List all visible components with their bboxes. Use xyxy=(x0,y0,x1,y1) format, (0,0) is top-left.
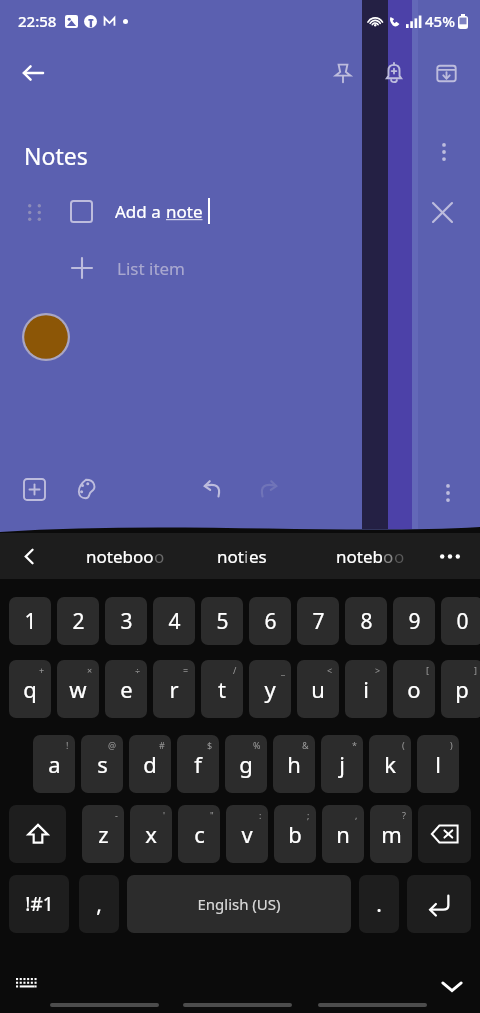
staticText: * xyxy=(352,739,357,751)
staticText: o xyxy=(383,545,394,568)
button[interactable]: 7 xyxy=(297,597,339,645)
staticText: e xyxy=(120,674,133,704)
button[interactable]: w xyxy=(57,660,99,718)
button[interactable]: p xyxy=(441,660,480,718)
staticText: ! xyxy=(66,739,69,751)
button[interactable]: 5 xyxy=(201,597,243,645)
button[interactable]: noteboo xyxy=(70,533,180,579)
button[interactable]: r xyxy=(153,660,195,718)
button[interactable]: n xyxy=(322,805,364,863)
staticText: o xyxy=(407,674,421,704)
button[interactable]: 6 xyxy=(249,597,291,645)
staticText: 5 xyxy=(216,607,229,636)
button[interactable]: b xyxy=(274,805,316,863)
button[interactable]: z xyxy=(82,805,124,863)
button[interactable]: Add xyxy=(10,465,58,513)
button[interactable]: x xyxy=(130,805,172,863)
staticText: . xyxy=(376,890,382,919)
button[interactable]: Enter xyxy=(407,875,471,933)
button[interactable]: Color palette xyxy=(62,465,110,513)
staticText: m xyxy=(381,819,402,849)
staticText: f xyxy=(194,749,202,779)
staticText: 4 xyxy=(168,607,181,636)
button[interactable]: Change keyboard xyxy=(8,966,46,1004)
staticText: s xyxy=(97,749,108,779)
button[interactable]: Add a xyxy=(0,190,480,234)
staticText: ' xyxy=(163,809,166,821)
button[interactable]: 0 xyxy=(441,597,480,645)
button[interactable]: 8 xyxy=(345,597,387,645)
staticText: Add a xyxy=(115,200,166,223)
button[interactable]: More options xyxy=(422,130,466,174)
staticText: 7 xyxy=(312,607,325,636)
staticText: noteb xyxy=(336,545,383,568)
staticText: b xyxy=(288,819,302,849)
button[interactable]: j xyxy=(321,735,363,793)
button[interactable]: t xyxy=(201,660,243,718)
button[interactable]: , xyxy=(79,875,119,933)
staticText: note xyxy=(166,200,203,223)
button[interactable]: o xyxy=(393,660,435,718)
staticText: !#1 xyxy=(25,891,54,917)
staticText: 9 xyxy=(408,607,421,636)
button[interactable]: . xyxy=(359,875,399,933)
button[interactable]: g xyxy=(225,735,267,793)
staticText: q xyxy=(23,674,37,704)
staticText: 22:58 xyxy=(18,11,57,31)
button[interactable]: More xyxy=(424,469,472,517)
staticText: o xyxy=(154,545,165,568)
button[interactable]: f xyxy=(177,735,219,793)
button[interactable]: 9 xyxy=(393,597,435,645)
button[interactable]: More suggestions xyxy=(428,534,472,578)
staticText: _ xyxy=(281,664,285,676)
button[interactable]: Previous suggestions xyxy=(8,535,50,577)
button[interactable]: Pin xyxy=(318,48,368,98)
button[interactable]: y xyxy=(249,660,291,718)
staticText: ) xyxy=(450,739,453,751)
button[interactable]: !#1 xyxy=(9,875,69,933)
button[interactable]: not xyxy=(196,533,288,579)
button[interactable]: Remove item xyxy=(420,190,464,234)
button[interactable]: k xyxy=(369,735,411,793)
button[interactable]: u xyxy=(297,660,339,718)
button[interactable]: a xyxy=(33,735,75,793)
button[interactable]: Archive xyxy=(420,47,472,99)
button[interactable]: Undo xyxy=(188,465,236,513)
button[interactable]: l xyxy=(417,735,459,793)
staticText: # xyxy=(159,739,165,751)
button[interactable]: s xyxy=(81,735,123,793)
button[interactable]: e xyxy=(105,660,147,718)
button[interactable]: Hide keyboard xyxy=(432,966,472,1006)
staticText: w xyxy=(69,674,87,704)
button[interactable]: noteb xyxy=(318,533,422,579)
staticText: [ xyxy=(426,664,429,676)
staticText: ; xyxy=(307,809,310,821)
staticText: ÷ xyxy=(135,664,141,676)
button[interactable]: 4 xyxy=(153,597,195,645)
staticText: 6 xyxy=(264,607,277,636)
button[interactable]: English (US) xyxy=(127,875,351,933)
staticText: 0 xyxy=(456,607,469,636)
button[interactable]: Back xyxy=(10,50,56,96)
button[interactable]: h xyxy=(273,735,315,793)
button[interactable]: q xyxy=(9,660,51,718)
button[interactable]: List item xyxy=(0,248,480,288)
staticText: 8 xyxy=(360,607,373,636)
button[interactable]: Shift xyxy=(9,805,66,863)
button[interactable]: d xyxy=(129,735,171,793)
staticText: ] xyxy=(474,664,477,676)
button[interactable]: Add reminder xyxy=(368,47,420,99)
button[interactable]: 2 xyxy=(57,597,99,645)
button[interactable]: v xyxy=(226,805,268,863)
staticText: j xyxy=(339,749,345,779)
button[interactable]: Backspace xyxy=(418,805,471,863)
staticText: y xyxy=(264,674,276,704)
staticText: p xyxy=(455,674,469,704)
button[interactable]: 1 xyxy=(9,597,51,645)
button[interactable]: Redo xyxy=(244,465,292,513)
button[interactable]: 3 xyxy=(105,597,147,645)
button[interactable]: c xyxy=(178,805,220,863)
button[interactable]: i xyxy=(345,660,387,718)
button[interactable]: m xyxy=(370,805,412,863)
staticText: r xyxy=(169,674,179,704)
